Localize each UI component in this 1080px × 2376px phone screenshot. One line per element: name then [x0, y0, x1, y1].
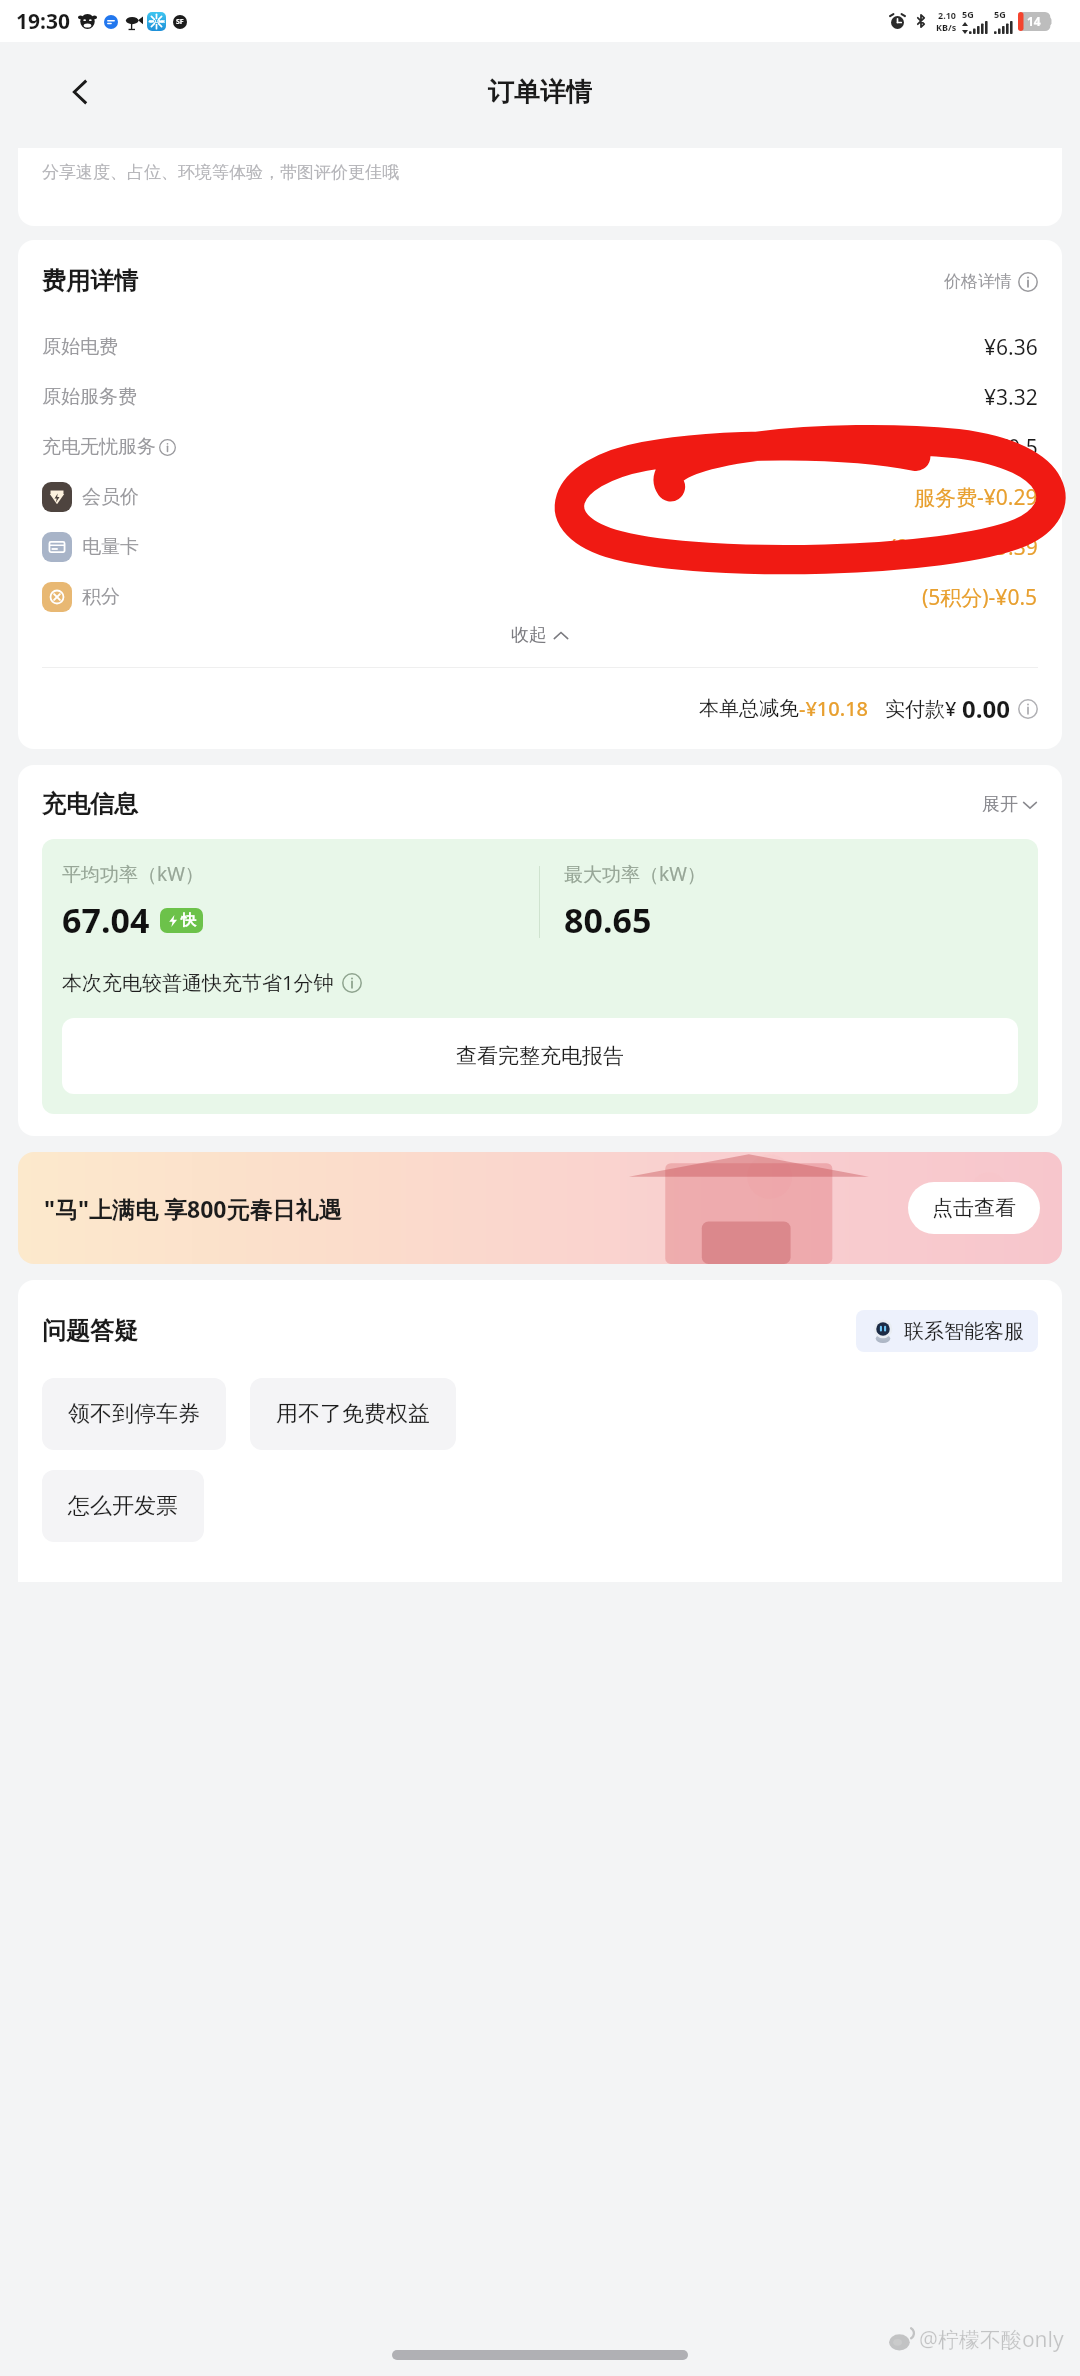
- staticText: 价格详情: [944, 271, 1012, 292]
- staticText: 14: [1027, 13, 1041, 29]
- staticText: (5积分)-¥0.5: [922, 583, 1038, 612]
- button[interactable]: 电量卡: [42, 522, 1038, 572]
- staticText: 平均功率（kW）: [62, 861, 204, 887]
- staticText: 订单详情: [488, 76, 592, 109]
- button[interactable]: 积分: [42, 572, 1038, 622]
- staticText: 收起: [511, 624, 547, 647]
- staticText: 原始电费: [42, 335, 118, 359]
- staticText: 领不到停车券: [68, 1400, 200, 1428]
- staticText: 实付款¥: [885, 695, 962, 722]
- staticText: 本次充电较普通快充节省1分钟: [62, 969, 334, 996]
- button[interactable]: 会员价: [42, 472, 1038, 522]
- button[interactable]: 怎么开发票: [42, 1470, 204, 1542]
- staticText: 服务费-¥0.29: [914, 483, 1038, 512]
- staticText: 5G: [994, 8, 1006, 20]
- button[interactable]: 查看完整充电报告: [62, 1018, 1018, 1094]
- staticText: 最大功率（kW）: [564, 861, 706, 887]
- staticText: 会员价: [82, 485, 139, 509]
- button[interactable]: 联系智能客服: [870, 1318, 1024, 1344]
- staticText: 本单总减免: [699, 696, 799, 721]
- staticText: SF: [176, 17, 184, 27]
- staticText: 积分: [82, 585, 120, 609]
- staticText: 展开: [982, 793, 1018, 816]
- button[interactable]: 原始服务费: [42, 372, 1038, 422]
- staticText: @柠檬不酸only: [919, 2325, 1064, 2354]
- staticText: 充电信息: [42, 789, 138, 819]
- staticText: 2.10: [938, 9, 956, 21]
- button[interactable]: 收起: [42, 624, 1038, 647]
- staticText: 联系智能客服: [904, 1319, 1024, 1344]
- staticText: 问题答疑: [42, 1316, 138, 1346]
- staticText: ¥3.32: [984, 383, 1038, 412]
- staticText: 分享速度、占位、环境等体验，带图评价更佳哦: [42, 162, 399, 183]
- staticText: 点击查看: [932, 1195, 1016, 1221]
- staticText: 查看完整充电报告: [456, 1043, 624, 1069]
- button[interactable]: 原始电费: [42, 322, 1038, 372]
- button[interactable]: 充电无忧服务: [42, 422, 1038, 472]
- staticText: "马"上满电 享800元春日礼遇: [44, 1193, 342, 1224]
- button[interactable]: 展开: [982, 793, 1038, 816]
- staticText: ¥0.5: [996, 433, 1038, 462]
- staticText: (9.777度)-¥9.39: [890, 533, 1038, 562]
- button[interactable]: "马"上满电 享800元春日礼遇: [18, 1152, 1062, 1264]
- staticText: 19:30: [16, 7, 70, 36]
- staticText: 用不了免费权益: [276, 1400, 430, 1428]
- button[interactable]: 点击查看: [932, 1195, 1016, 1221]
- staticText: 电量卡: [82, 535, 139, 559]
- staticText: 怎么开发票: [68, 1492, 178, 1520]
- staticText: -¥10.18: [799, 695, 869, 722]
- staticText: 67.04: [62, 897, 150, 943]
- staticText: KB/s: [936, 21, 957, 33]
- staticText: 5G: [962, 8, 974, 20]
- button[interactable]: 分享速度、占位、环境等体验，带图评价更佳哦: [18, 148, 1062, 226]
- button[interactable]: Back: [56, 68, 104, 116]
- staticText: 80.65: [564, 897, 652, 943]
- staticText: 原始服务费: [42, 385, 137, 409]
- button[interactable]: 用不了免费权益: [250, 1378, 456, 1450]
- staticText: TP-LINK: [149, 19, 165, 24]
- staticText: 充电无忧服务: [42, 435, 156, 459]
- staticText: 0.00: [962, 692, 1010, 725]
- staticText: ¥6.36: [984, 333, 1038, 362]
- staticText: 快: [181, 911, 196, 930]
- staticText: 费用详情: [42, 266, 138, 296]
- button[interactable]: 价格详情: [944, 271, 1038, 292]
- button[interactable]: 领不到停车券: [42, 1378, 226, 1450]
